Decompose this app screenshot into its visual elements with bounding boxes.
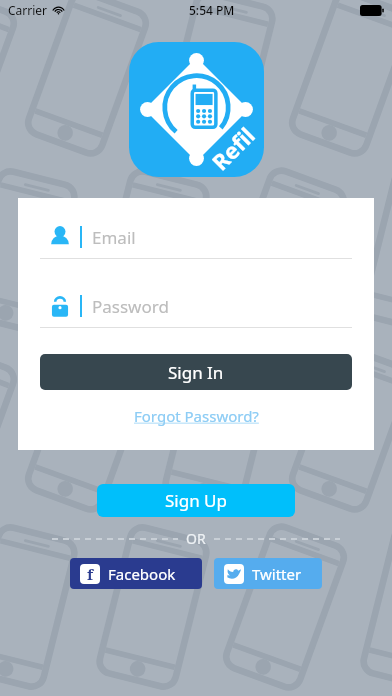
button[interactable]: Sign Up bbox=[97, 484, 295, 517]
staticText: Refil bbox=[205, 120, 261, 176]
staticText: Password bbox=[92, 295, 169, 318]
staticText: 5:54 PM bbox=[189, 2, 235, 18]
staticText: f bbox=[87, 564, 94, 584]
staticText: Facebook bbox=[108, 564, 176, 584]
button[interactable]: Forgot Password? bbox=[134, 406, 259, 426]
button[interactable]: Twitter bbox=[214, 558, 322, 589]
staticText: Sign Up bbox=[165, 489, 227, 512]
staticText: Email bbox=[92, 226, 136, 249]
staticText: OR bbox=[186, 529, 206, 548]
button[interactable]: Sign In bbox=[40, 354, 352, 390]
staticText: Twitter bbox=[252, 564, 302, 584]
staticText: Carrier bbox=[8, 2, 48, 18]
staticText: Sign In bbox=[168, 361, 224, 384]
button[interactable]: f bbox=[70, 558, 202, 589]
